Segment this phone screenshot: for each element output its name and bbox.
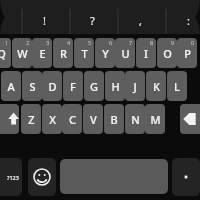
staticText: 7 bbox=[129, 39, 133, 46]
button[interactable]: Shift bbox=[0, 104, 19, 134]
staticText: Z bbox=[28, 112, 35, 127]
staticText: E bbox=[39, 46, 46, 61]
button[interactable]: ! bbox=[20, 6, 68, 34]
button[interactable]: I bbox=[136, 38, 156, 68]
button[interactable]: S bbox=[22, 71, 42, 101]
staticText: V bbox=[90, 112, 97, 127]
staticText: A bbox=[7, 79, 15, 94]
button[interactable]: ? bbox=[68, 6, 116, 34]
staticText: M bbox=[150, 112, 161, 127]
staticText: R bbox=[60, 46, 67, 61]
button[interactable]: A bbox=[1, 71, 21, 101]
staticText: Q bbox=[0, 46, 6, 61]
staticText: J bbox=[133, 79, 137, 94]
button[interactable]: G bbox=[84, 71, 104, 101]
staticText: O bbox=[163, 46, 172, 61]
staticText: G bbox=[90, 79, 98, 94]
staticText: 1 bbox=[5, 39, 9, 46]
staticText: K bbox=[153, 79, 160, 94]
staticText: Y bbox=[102, 46, 109, 61]
button[interactable]: : bbox=[164, 6, 200, 34]
staticText: N bbox=[131, 112, 140, 127]
staticText: B bbox=[110, 112, 118, 127]
button[interactable]: W bbox=[12, 38, 32, 68]
button[interactable]: X bbox=[42, 104, 62, 134]
staticText: W bbox=[17, 46, 28, 61]
staticText: , bbox=[139, 13, 142, 28]
staticText: X bbox=[49, 112, 56, 127]
staticText: P bbox=[184, 46, 191, 61]
staticText: H bbox=[111, 79, 120, 94]
button[interactable]: D bbox=[42, 71, 62, 101]
staticText: D bbox=[48, 79, 57, 94]
staticText: I bbox=[144, 46, 148, 61]
button[interactable]: , bbox=[116, 6, 164, 34]
button[interactable]: Space bbox=[60, 159, 168, 194]
staticText: ? bbox=[90, 13, 95, 28]
button[interactable]: F bbox=[63, 71, 83, 101]
button[interactable]: L bbox=[167, 71, 187, 101]
staticText: T bbox=[81, 46, 88, 61]
staticText: 8 bbox=[150, 39, 154, 46]
button[interactable]: R bbox=[53, 38, 73, 68]
button[interactable]: N bbox=[125, 104, 145, 134]
staticText: 5 bbox=[88, 39, 92, 46]
button[interactable]: Z bbox=[21, 104, 41, 134]
button[interactable]: B bbox=[104, 104, 124, 134]
staticText: 9 bbox=[171, 39, 175, 46]
button[interactable]: E bbox=[32, 38, 52, 68]
staticText: : bbox=[187, 13, 190, 28]
staticText: 4 bbox=[67, 39, 71, 46]
button[interactable]: M bbox=[145, 104, 165, 134]
button[interactable]: Emoji bbox=[28, 158, 56, 196]
button[interactable]: Symbols bbox=[0, 158, 22, 196]
staticText: 6 bbox=[109, 39, 113, 46]
staticText: U bbox=[121, 46, 130, 61]
staticText: L bbox=[174, 79, 180, 94]
button[interactable]: U bbox=[115, 38, 135, 68]
button[interactable]: Y bbox=[95, 38, 115, 68]
button[interactable]: Backspace bbox=[180, 104, 200, 134]
button[interactable]: P bbox=[177, 38, 197, 68]
staticText: S bbox=[29, 79, 36, 94]
button[interactable]: J bbox=[125, 71, 145, 101]
staticText: 0 bbox=[191, 39, 195, 46]
button[interactable]: O bbox=[157, 38, 177, 68]
staticText: 3 bbox=[46, 39, 50, 46]
staticText: C bbox=[69, 112, 76, 127]
button[interactable]: V bbox=[83, 104, 103, 134]
button[interactable]: Q bbox=[0, 38, 11, 68]
button[interactable]: T bbox=[74, 38, 94, 68]
button[interactable]: Period bbox=[172, 158, 200, 196]
staticText: 2 bbox=[26, 39, 30, 46]
button[interactable]: C bbox=[62, 104, 82, 134]
staticText: F bbox=[70, 79, 76, 94]
button[interactable]: K bbox=[146, 71, 166, 101]
staticText: ! bbox=[43, 13, 46, 28]
staticText: ?123 bbox=[7, 174, 19, 181]
button[interactable]: H bbox=[105, 71, 125, 101]
